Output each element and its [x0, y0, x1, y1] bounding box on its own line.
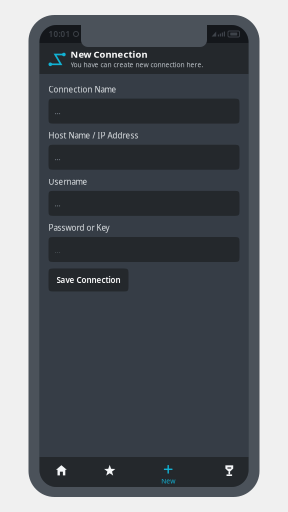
button[interactable]: Favourites: [81, 457, 136, 487]
staticText: New: [161, 477, 175, 485]
button[interactable]: Save Connection: [48, 268, 128, 291]
staticText: ...: [54, 152, 60, 162]
staticText: You have can create new connection here.: [70, 60, 203, 69]
staticText: 10:01: [48, 29, 70, 39]
button[interactable]: Achievements: [199, 457, 248, 487]
button[interactable]: New: [136, 457, 199, 487]
staticText: ...: [54, 198, 60, 209]
staticText: Password or Key: [48, 222, 109, 233]
staticText: Save Connection: [56, 275, 120, 285]
button[interactable]: Home: [39, 457, 81, 487]
staticText: Connection Name: [48, 84, 116, 95]
staticText: ...: [54, 244, 60, 255]
staticText: New Connection: [70, 48, 147, 60]
staticText: Host Name / IP Address: [48, 130, 138, 141]
staticText: ...: [54, 106, 60, 116]
staticText: Username: [48, 176, 87, 187]
